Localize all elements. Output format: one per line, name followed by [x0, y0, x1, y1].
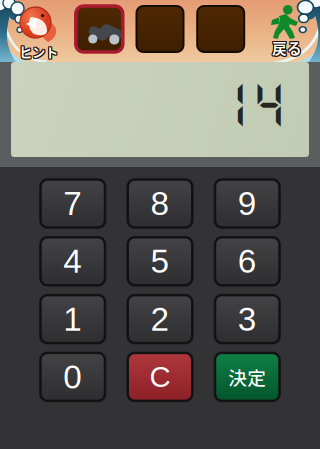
- staticText: 9: [238, 185, 257, 222]
- staticText: 決定: [228, 363, 266, 390]
- staticText: 戻る: [272, 36, 302, 57]
- staticText: ヒント: [18, 41, 57, 60]
- staticText: 2: [150, 300, 169, 338]
- button[interactable]: 5: [128, 237, 192, 285]
- button[interactable]: 戻る: [265, 0, 305, 62]
- button[interactable]: 決定: [215, 353, 279, 401]
- staticText: 3: [238, 300, 257, 338]
- button[interactable]: 6: [215, 237, 279, 285]
- button[interactable]: 8: [128, 179, 192, 227]
- staticText: 戻る: [273, 38, 303, 59]
- staticText: 6: [238, 243, 257, 280]
- staticText: 戻る: [272, 38, 302, 59]
- staticText: ヒント: [18, 42, 57, 61]
- button[interactable]: 2: [128, 295, 192, 343]
- staticText: ヒント: [20, 41, 59, 60]
- button[interactable]: 7: [40, 179, 105, 227]
- button[interactable]: 空きスロット: [136, 6, 183, 52]
- button[interactable]: 3: [215, 295, 279, 343]
- button[interactable]: アイテム1: [76, 6, 123, 52]
- button[interactable]: 空きスロット: [197, 6, 244, 52]
- staticText: 戻る: [273, 36, 303, 57]
- staticText: ヒント: [18, 43, 57, 62]
- staticText: C: [149, 360, 170, 393]
- button[interactable]: ヒント: [18, 0, 62, 62]
- button[interactable]: クリア: [128, 353, 192, 401]
- staticText: ヒント: [20, 43, 59, 62]
- staticText: 戻る: [271, 38, 301, 59]
- staticText: 4: [63, 243, 82, 280]
- staticText: 戻る: [271, 37, 301, 58]
- staticText: 戻る: [272, 37, 302, 58]
- staticText: 5: [150, 243, 169, 280]
- button[interactable]: 4: [40, 237, 105, 285]
- button[interactable]: 1: [40, 295, 105, 343]
- button[interactable]: 0: [40, 353, 105, 401]
- staticText: 0: [63, 358, 82, 395]
- staticText: ヒント: [19, 43, 58, 62]
- staticText: 14: [213, 74, 287, 133]
- staticText: 1: [63, 300, 82, 338]
- staticText: 戻る: [271, 36, 301, 57]
- staticText: 7: [63, 185, 82, 222]
- staticText: 戻る: [273, 37, 303, 58]
- staticText: ヒント: [19, 42, 58, 61]
- staticText: ヒント: [19, 41, 58, 60]
- staticText: 8: [150, 185, 169, 222]
- button[interactable]: 9: [215, 179, 279, 227]
- staticText: ヒント: [20, 42, 59, 61]
